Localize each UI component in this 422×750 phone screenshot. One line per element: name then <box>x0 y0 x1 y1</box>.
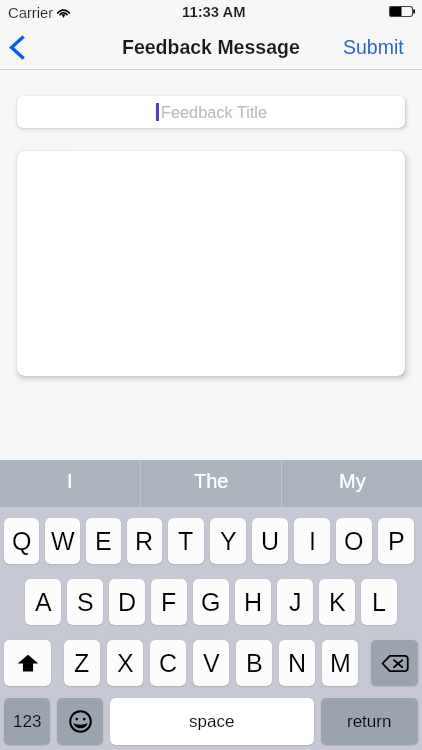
staticText: M <box>330 649 351 677</box>
staticText: Q <box>12 527 32 555</box>
button[interactable]: P <box>378 518 414 564</box>
staticText: B <box>246 649 263 677</box>
button[interactable]: R <box>127 518 162 564</box>
button[interactable]: M <box>322 640 358 686</box>
staticText: Carrier <box>8 5 54 22</box>
staticText: K <box>329 588 346 616</box>
button[interactable]: I <box>294 518 330 564</box>
button[interactable]: B <box>236 640 272 686</box>
staticText: G <box>201 588 221 616</box>
staticText: A <box>35 588 52 616</box>
button[interactable]: Feedback Title <box>17 96 405 128</box>
button[interactable]: 123 <box>4 698 50 745</box>
staticText: Y <box>220 527 237 555</box>
staticText: The <box>194 470 229 492</box>
button[interactable]: return <box>321 698 418 745</box>
button[interactable]: A <box>25 579 61 625</box>
button[interactable]: H <box>235 579 271 625</box>
button[interactable]: U <box>252 518 288 564</box>
button[interactable]: X <box>107 640 143 686</box>
button[interactable]: My <box>282 460 422 507</box>
staticText: R <box>135 527 154 555</box>
button[interactable]: I <box>0 460 140 507</box>
staticText: My <box>339 470 366 492</box>
button[interactable]: G <box>193 579 229 625</box>
button[interactable]: V <box>193 640 229 686</box>
staticText: space <box>189 712 235 731</box>
button[interactable]: Z <box>64 640 100 686</box>
button[interactable]: Emoji <box>57 698 103 745</box>
button[interactable]: F <box>151 579 187 625</box>
staticText: I <box>309 527 316 555</box>
button[interactable]: W <box>45 518 80 564</box>
staticText: N <box>288 649 307 677</box>
staticText: P <box>388 527 405 555</box>
staticText: D <box>118 588 137 616</box>
staticText: Feedback Title <box>161 103 267 121</box>
staticText: J <box>289 588 302 616</box>
staticText: S <box>77 588 94 616</box>
staticText: Submit <box>343 36 404 58</box>
button[interactable]: N <box>279 640 315 686</box>
button[interactable]: K <box>319 579 355 625</box>
staticText: I <box>67 470 73 492</box>
button[interactable]: S <box>67 579 103 625</box>
staticText: O <box>344 527 364 555</box>
staticText: X <box>117 649 134 677</box>
staticText: 11:33 AM <box>182 4 246 21</box>
staticText: E <box>95 527 112 555</box>
staticText: V <box>203 649 220 677</box>
button[interactable]: L <box>361 579 397 625</box>
button[interactable]: Back <box>2 32 32 62</box>
button[interactable]: C <box>150 640 186 686</box>
button[interactable]: space <box>110 698 314 745</box>
staticText: T <box>178 527 194 555</box>
staticText: Z <box>74 649 90 677</box>
button[interactable]: The <box>141 460 281 507</box>
staticText: H <box>244 588 263 616</box>
button[interactable]: J <box>277 579 313 625</box>
staticText: Feedback Message <box>122 36 300 58</box>
button[interactable]: Q <box>4 518 39 564</box>
staticText: W <box>51 527 75 555</box>
button[interactable]: Y <box>210 518 246 564</box>
staticText: L <box>372 588 386 616</box>
button[interactable]: T <box>168 518 204 564</box>
staticText: U <box>261 527 280 555</box>
staticText: C <box>159 649 178 677</box>
staticText: F <box>161 588 177 616</box>
button[interactable]: Backspace <box>371 640 418 686</box>
button[interactable]: O <box>336 518 372 564</box>
button[interactable]: Submit <box>343 36 404 58</box>
button[interactable]: D <box>109 579 145 625</box>
staticText: 123 <box>13 712 42 731</box>
button[interactable]: Shift <box>4 640 51 686</box>
staticText: return <box>347 712 392 731</box>
button[interactable]: E <box>86 518 121 564</box>
